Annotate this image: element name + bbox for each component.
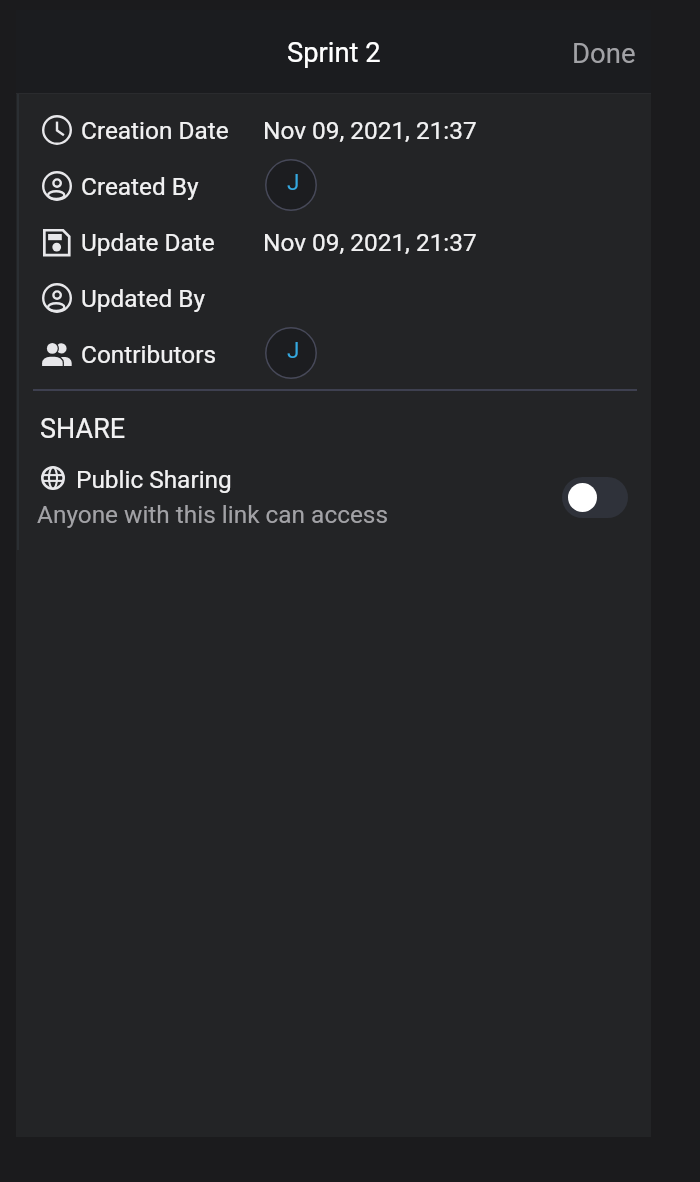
button[interactable]: Update Date bbox=[16, 214, 651, 270]
staticText: Creation Date bbox=[81, 116, 229, 145]
staticText: Update Date bbox=[81, 228, 215, 257]
staticText: J bbox=[287, 337, 300, 363]
button[interactable]: Toggle public sharing bbox=[562, 477, 628, 518]
staticText: Done bbox=[572, 37, 636, 69]
staticText: Updated By bbox=[81, 284, 205, 313]
staticText: Public Sharing bbox=[76, 465, 232, 494]
button[interactable]: Created By bbox=[16, 158, 651, 214]
staticText: Sprint 2 bbox=[287, 37, 381, 69]
button[interactable]: Creation Date bbox=[16, 102, 651, 158]
button[interactable]: Public Sharing bbox=[16, 450, 651, 530]
button[interactable]: Updated By bbox=[16, 270, 651, 326]
staticText: Anyone with this link can access bbox=[37, 500, 389, 529]
staticText: J bbox=[287, 169, 300, 195]
staticText: Contributors bbox=[81, 340, 217, 369]
staticText: Nov 09, 2021, 21:37 bbox=[263, 228, 477, 257]
button[interactable]: Contributors bbox=[16, 326, 651, 382]
button[interactable]: Done bbox=[556, 23, 651, 83]
staticText: Nov 09, 2021, 21:37 bbox=[263, 116, 477, 145]
staticText: Created By bbox=[81, 172, 199, 201]
staticText: SHARE bbox=[40, 413, 126, 445]
